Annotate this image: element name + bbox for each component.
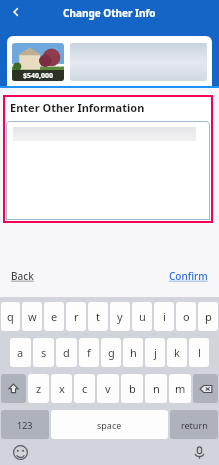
staticText: l: [198, 345, 201, 360]
staticText: c: [82, 381, 88, 396]
button[interactable]: m: [169, 374, 191, 403]
button[interactable]: $540,000: [7, 36, 212, 88]
button[interactable]: Confirm: [167, 267, 210, 285]
button[interactable]: c: [74, 374, 95, 403]
staticText: r: [74, 309, 79, 324]
button[interactable]: y: [110, 302, 130, 331]
button[interactable]: Back: [4, 0, 28, 24]
button[interactable]: g: [101, 338, 121, 367]
staticText: $540,000: [23, 71, 54, 81]
staticText: s: [41, 345, 47, 360]
staticText: Confirm: [169, 269, 208, 283]
staticText: d: [63, 345, 70, 360]
staticText: b: [129, 381, 136, 396]
staticText: y: [117, 309, 123, 324]
staticText: f: [87, 345, 91, 360]
staticText: 123: [17, 419, 33, 431]
button[interactable]: s: [33, 338, 54, 367]
staticText: z: [36, 381, 42, 396]
button[interactable]: p: [198, 302, 218, 331]
button[interactable]: a: [10, 338, 31, 367]
button[interactable]: l: [189, 338, 209, 367]
staticText: w: [28, 309, 37, 324]
button[interactable]: j: [145, 338, 165, 367]
staticText: o: [183, 309, 190, 324]
staticText: q: [7, 309, 14, 324]
staticText: a: [17, 345, 24, 360]
button[interactable]: h: [123, 338, 143, 367]
staticText: n: [153, 381, 160, 396]
button[interactable]: f: [79, 338, 99, 367]
button[interactable]: o: [176, 302, 196, 331]
button[interactable]: e: [44, 302, 64, 331]
button[interactable]: x: [51, 374, 72, 403]
staticText: m: [175, 381, 186, 396]
staticText: return: [181, 419, 208, 431]
staticText: p: [205, 309, 212, 324]
staticText: x: [59, 381, 65, 396]
staticText: v: [105, 381, 111, 396]
button[interactable]: w: [22, 302, 42, 331]
button[interactable]: u: [132, 302, 152, 331]
button[interactable]: n: [145, 374, 167, 403]
button[interactable]: return: [170, 410, 218, 439]
button[interactable]: space: [51, 410, 168, 439]
staticText: t: [96, 309, 100, 324]
button[interactable]: Emoji: [8, 440, 32, 464]
button[interactable]: i: [154, 302, 174, 331]
staticText: k: [174, 345, 180, 360]
button[interactable]: 123: [1, 410, 49, 439]
button[interactable]: t: [88, 302, 108, 331]
button[interactable]: Back: [9, 267, 36, 285]
staticText: j: [154, 345, 157, 360]
button[interactable]: q: [1, 302, 20, 331]
staticText: Enter Other Information: [10, 100, 145, 115]
button[interactable]: z: [28, 374, 49, 403]
staticText: g: [108, 345, 115, 360]
button[interactable]: [6, 121, 210, 220]
button[interactable]: k: [167, 338, 187, 367]
button[interactable]: r: [66, 302, 86, 331]
button[interactable]: d: [56, 338, 77, 367]
staticText: h: [130, 345, 137, 360]
button[interactable]: Backspace: [193, 374, 218, 403]
staticText: space: [97, 419, 122, 431]
button[interactable]: v: [97, 374, 119, 403]
staticText: Change Other Info: [63, 6, 156, 20]
staticText: u: [139, 309, 146, 324]
button[interactable]: b: [121, 374, 143, 403]
staticText: Back: [11, 269, 34, 283]
staticText: i: [163, 309, 166, 324]
button[interactable]: Voice input: [187, 440, 211, 464]
button[interactable]: Shift: [1, 374, 26, 403]
staticText: e: [51, 309, 58, 324]
